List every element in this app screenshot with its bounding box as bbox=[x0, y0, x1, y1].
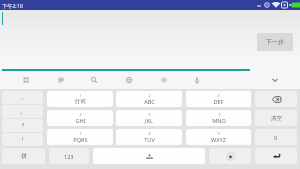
button[interactable]: Symbols bbox=[11, 71, 41, 89]
staticText: ， bbox=[20, 94, 26, 101]
button[interactable]: Punctuation bbox=[209, 148, 251, 164]
staticText: 2 bbox=[148, 93, 151, 98]
button[interactable]: Hide keyboard bbox=[260, 71, 290, 89]
button[interactable]: Search bbox=[79, 71, 109, 89]
button[interactable]: Handwriting bbox=[149, 71, 179, 89]
button[interactable]: ！ bbox=[2, 133, 43, 146]
button[interactable]: Emoji bbox=[114, 71, 144, 89]
staticText: 1 bbox=[79, 93, 82, 98]
staticText: ！ bbox=[20, 136, 26, 143]
button[interactable]: Backspace bbox=[255, 91, 297, 107]
staticText: 。 bbox=[20, 108, 26, 115]
staticText: 分词 bbox=[74, 98, 86, 105]
button[interactable]: Clipboard bbox=[46, 71, 76, 89]
staticText: ABC bbox=[144, 98, 155, 106]
staticText: WXYZ bbox=[211, 136, 226, 144]
staticText: 4 bbox=[79, 112, 82, 117]
staticText: MNO bbox=[212, 117, 226, 125]
staticText: 7 bbox=[79, 131, 82, 136]
staticText: 6 bbox=[218, 112, 221, 117]
staticText: ？ bbox=[20, 122, 26, 129]
staticText: 123 bbox=[64, 153, 74, 160]
button[interactable]: 6 bbox=[186, 110, 251, 126]
staticText: 下午2:10 bbox=[2, 2, 23, 9]
staticText: TUV bbox=[144, 136, 155, 144]
button[interactable]: 7 bbox=[47, 129, 113, 145]
staticText: 清空 bbox=[271, 115, 282, 122]
staticText: JKL bbox=[145, 117, 153, 125]
button[interactable]: Enter bbox=[255, 148, 297, 164]
button[interactable]: 1 bbox=[47, 91, 113, 107]
button[interactable]: ？ bbox=[2, 119, 43, 132]
button[interactable]: 0 bbox=[255, 129, 297, 145]
staticText: 下一步 bbox=[266, 38, 284, 46]
staticText: 5 bbox=[148, 112, 151, 117]
button[interactable]: 下一步 bbox=[257, 33, 293, 51]
staticText: 8 bbox=[148, 131, 151, 136]
button[interactable]: Space bbox=[93, 148, 205, 164]
staticText: DEF bbox=[213, 98, 224, 106]
button[interactable]: Switch input method bbox=[2, 148, 45, 164]
button[interactable]: 清空 bbox=[255, 110, 297, 126]
button[interactable]: 5 bbox=[116, 110, 182, 126]
staticText: PQRS bbox=[73, 136, 88, 144]
button[interactable]: 4 bbox=[47, 110, 113, 126]
staticText: GHI bbox=[75, 117, 86, 125]
button[interactable]: 2 bbox=[116, 91, 182, 107]
staticText: 拼 bbox=[21, 152, 27, 160]
button[interactable]: Voice input bbox=[182, 71, 212, 89]
staticText: 9 bbox=[217, 131, 220, 136]
staticText: 3 bbox=[217, 93, 220, 98]
button[interactable]: 123 bbox=[49, 148, 89, 164]
staticText: 0 bbox=[274, 134, 278, 141]
button[interactable]: 8 bbox=[116, 129, 182, 145]
button[interactable]: 9 bbox=[186, 129, 251, 145]
button[interactable]: 3 bbox=[186, 91, 251, 107]
